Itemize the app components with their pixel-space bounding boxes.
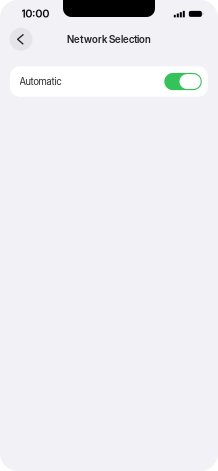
staticText: 10:00 [22,7,50,20]
button[interactable]: Automatic [10,66,208,97]
staticText: Automatic [19,76,61,87]
button[interactable]: Back [9,28,32,51]
staticText: Network Selection [67,33,151,45]
